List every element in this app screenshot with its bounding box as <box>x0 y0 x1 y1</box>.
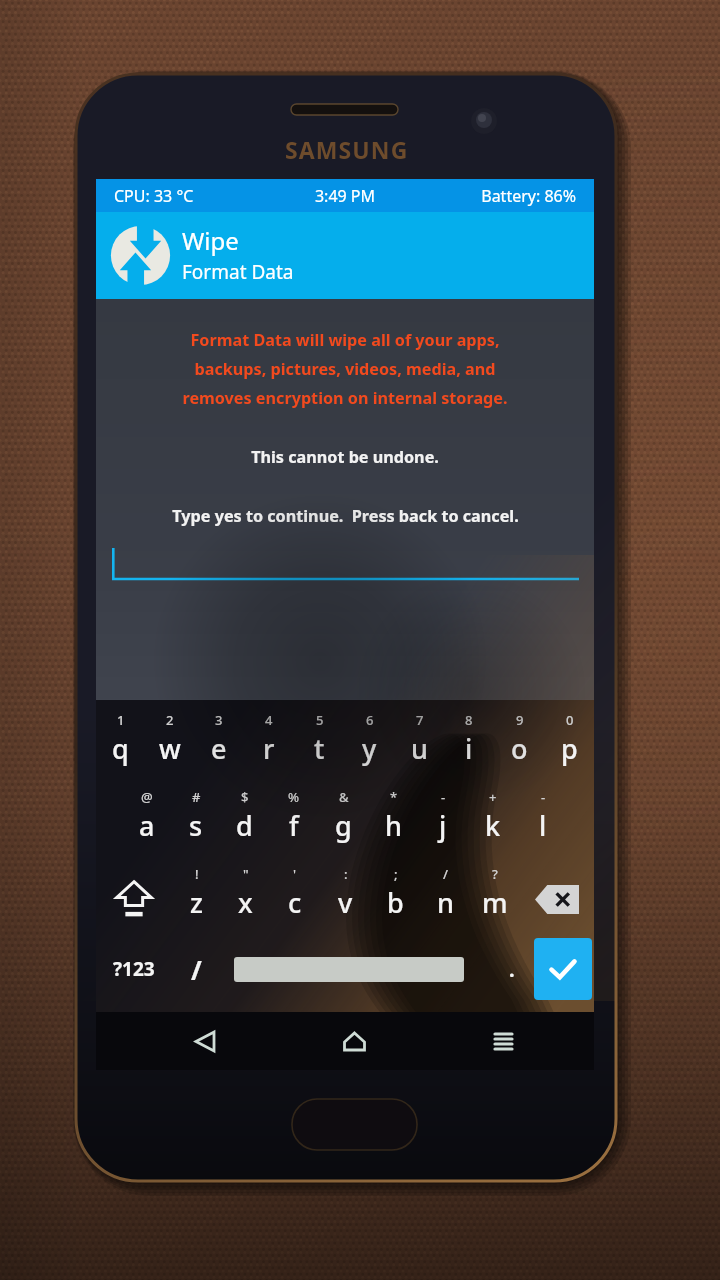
button[interactable]: - <box>518 777 568 854</box>
button[interactable]: Enter <box>532 931 594 1007</box>
staticText: : <box>344 865 348 883</box>
staticText: % <box>288 788 300 806</box>
staticText: h <box>385 807 402 844</box>
staticText: & <box>339 788 349 806</box>
button[interactable]: - <box>418 777 468 854</box>
staticText: 0 <box>566 711 574 729</box>
staticText: 2 <box>166 711 174 729</box>
button[interactable]: $ <box>220 777 269 854</box>
staticText: s <box>189 807 203 844</box>
staticText: . <box>509 956 515 983</box>
staticText: o <box>511 730 528 767</box>
button[interactable]: 7 <box>394 700 444 777</box>
staticText: ! <box>195 865 199 883</box>
staticText: ' <box>293 865 297 883</box>
button[interactable]: : <box>320 854 370 931</box>
button[interactable]: @ <box>122 777 171 854</box>
staticText: m <box>482 884 508 921</box>
button[interactable]: 5 <box>294 700 344 777</box>
staticText: 3:49 PM <box>262 185 428 207</box>
button[interactable]: ! <box>172 854 221 931</box>
staticText: - <box>441 788 446 806</box>
staticText: 3 <box>215 711 223 729</box>
button[interactable]: / <box>420 854 470 931</box>
button[interactable]: 6 <box>344 700 394 777</box>
staticText: Battery: 86% <box>428 185 576 207</box>
staticText: 9 <box>516 711 524 729</box>
staticText: w <box>159 730 181 767</box>
staticText: This cannot be undone. <box>251 446 439 468</box>
staticText: - <box>541 788 546 806</box>
staticText: b <box>387 884 404 921</box>
staticText: i <box>465 730 473 767</box>
staticText: 7 <box>416 711 424 729</box>
staticText: / <box>443 865 449 883</box>
staticText: * <box>390 788 398 806</box>
button[interactable]: . <box>492 931 532 1007</box>
staticText: e <box>211 730 227 767</box>
staticText: 1 <box>117 711 125 729</box>
staticText: Format Data <box>182 259 294 285</box>
staticText: c <box>288 884 302 921</box>
button[interactable]: 9 <box>494 700 544 777</box>
button[interactable]: Space <box>220 931 492 1007</box>
staticText: f <box>289 807 299 844</box>
button[interactable]: % <box>269 777 318 854</box>
staticText: Wipe <box>182 224 239 257</box>
staticText: Type yes to continue. Press back to canc… <box>172 505 519 527</box>
staticText: $ <box>241 788 249 806</box>
button[interactable]: ? <box>470 854 520 931</box>
staticText: u <box>411 730 428 767</box>
staticText: + <box>489 788 497 806</box>
staticText: v <box>338 884 353 921</box>
button[interactable]: Home <box>280 1012 429 1070</box>
button[interactable]: ' <box>270 854 320 931</box>
button[interactable]: " <box>221 854 270 931</box>
staticText: removes encryption on internal storage. <box>182 387 508 409</box>
staticText: 8 <box>465 711 473 729</box>
staticText: d <box>236 807 253 844</box>
staticText: 6 <box>366 711 374 729</box>
button[interactable]: & <box>318 777 368 854</box>
button[interactable]: 1 <box>96 700 145 777</box>
staticText: Format Data will wipe all of your apps, <box>190 329 500 351</box>
button[interactable]: 2 <box>145 700 194 777</box>
staticText: / <box>191 952 202 987</box>
button[interactable]: Wipe <box>96 212 594 299</box>
button[interactable]: # <box>171 777 220 854</box>
button[interactable]: Recent apps <box>429 1012 578 1070</box>
staticText: SAMSUNG <box>285 134 409 165</box>
staticText: " <box>243 865 249 883</box>
button[interactable]: + <box>468 777 518 854</box>
button[interactable]: 0 <box>544 700 594 777</box>
staticText: @ <box>141 788 153 806</box>
staticText: n <box>437 884 454 921</box>
button[interactable]: 3 <box>194 700 244 777</box>
staticText: x <box>238 884 253 921</box>
staticText: l <box>539 807 547 844</box>
button[interactable]: ?123 <box>96 931 172 1007</box>
staticText: a <box>139 807 155 844</box>
button[interactable]: Shift <box>96 854 172 931</box>
button[interactable]: 8 <box>444 700 494 777</box>
staticText: j <box>439 807 447 844</box>
staticText: p <box>561 730 578 767</box>
button[interactable]: 4 <box>244 700 294 777</box>
staticText: CPU: 33 °C <box>114 185 262 207</box>
staticText: g <box>335 807 352 844</box>
button[interactable]: Back <box>130 1012 280 1070</box>
staticText: ; <box>394 865 398 883</box>
staticText: # <box>192 788 201 806</box>
staticText: t <box>314 730 325 767</box>
button[interactable]: ; <box>370 854 420 931</box>
staticText: z <box>190 884 203 921</box>
staticText: k <box>485 807 501 844</box>
button[interactable]: / <box>172 931 220 1007</box>
staticText: y <box>362 730 377 767</box>
staticText: ?123 <box>113 956 155 982</box>
staticText: backups, pictures, videos, media, and <box>194 358 496 380</box>
button[interactable]: Backspace <box>520 854 594 931</box>
staticText: 4 <box>265 711 273 729</box>
button[interactable]: * <box>368 777 418 854</box>
staticText: q <box>112 730 129 767</box>
